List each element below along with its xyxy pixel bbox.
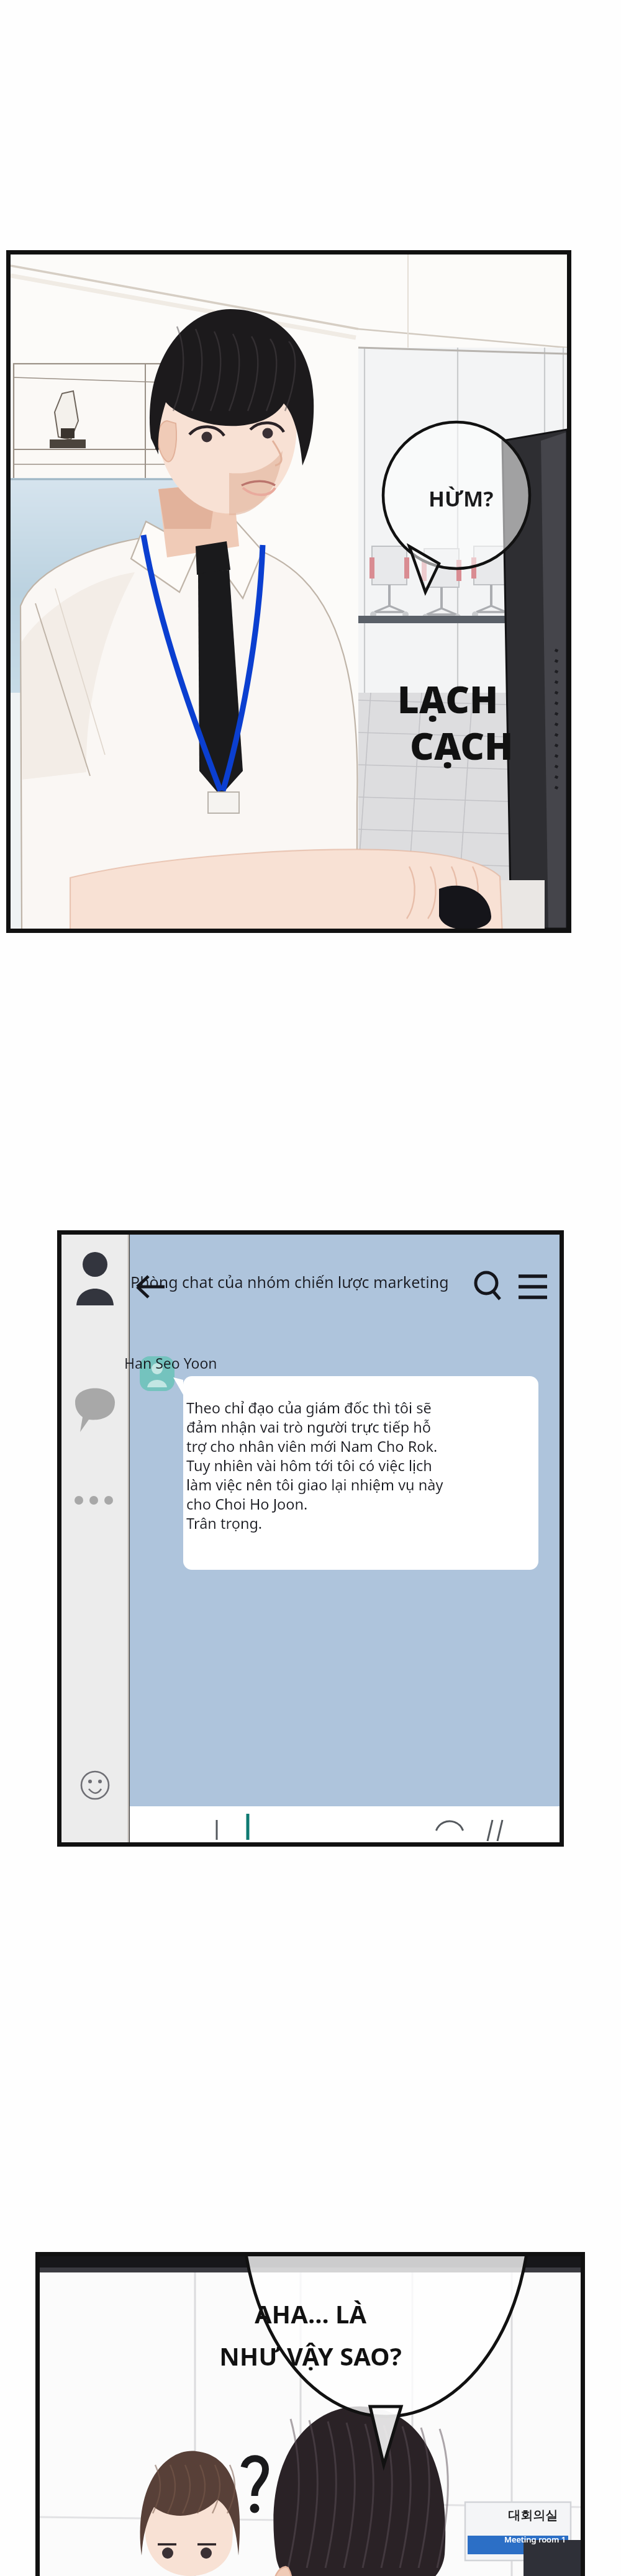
button[interactable]: Office scene panel bbox=[6, 250, 571, 933]
button[interactable]: Group chat screenshot bbox=[57, 1230, 564, 1847]
staticText: AHA... LÀ bbox=[214, 2297, 407, 2330]
staticText: Meeting room 1 bbox=[504, 2534, 566, 2545]
staticText: Han Seo Yoon bbox=[124, 1353, 217, 1372]
button[interactable]: Hallway scene panel bbox=[35, 2252, 585, 2576]
staticText: LẠCH bbox=[397, 673, 499, 724]
staticText: HỪM? bbox=[428, 484, 494, 513]
staticText: Theo chỉ đạo của giám đốc thì tôi sẽ đảm… bbox=[186, 1398, 447, 1533]
staticText: NHƯ VẬY SAO? bbox=[214, 2339, 407, 2372]
staticText: Phòng chat của nhóm chiến lược marketing bbox=[130, 1271, 449, 1292]
button[interactable]: Emoji bbox=[65, 1783, 110, 1827]
button[interactable]: Back bbox=[71, 1254, 115, 1297]
staticText: 대회의실 bbox=[508, 2508, 558, 2523]
button[interactable]: Menu bbox=[525, 1255, 566, 1296]
staticText: CẠCH bbox=[410, 720, 514, 771]
button[interactable]: Search bbox=[483, 1254, 527, 1299]
